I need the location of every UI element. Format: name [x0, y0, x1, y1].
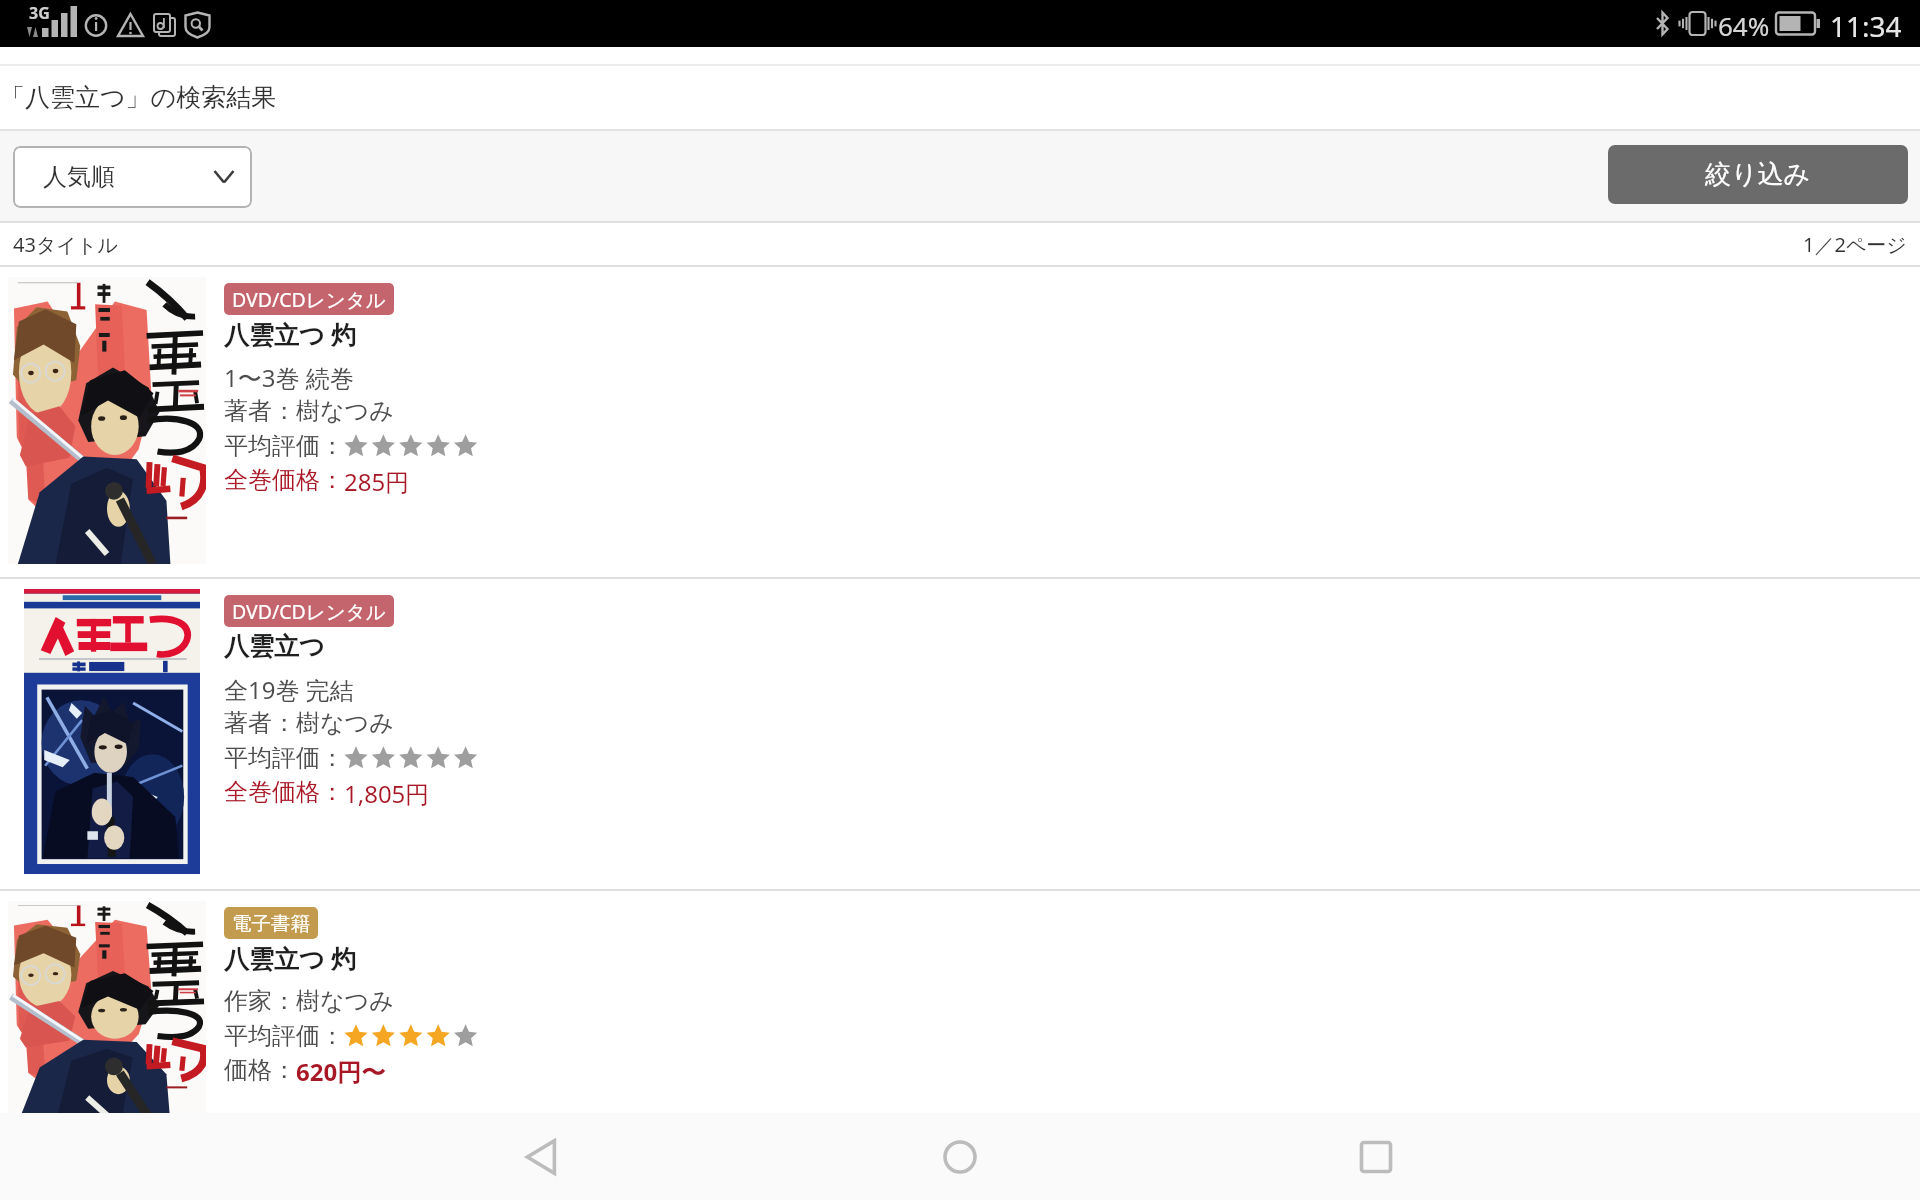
button[interactable]: Back: [481, 1117, 601, 1197]
staticText: 全巻価格：: [224, 465, 344, 495]
staticText: 平均評価：: [224, 431, 344, 461]
staticText: 3G: [29, 2, 50, 24]
staticText: 八雲立つ 灼: [224, 941, 357, 975]
button[interactable]: DVD/CDレンタル: [0, 267, 1920, 577]
staticText: 64%: [1718, 8, 1770, 43]
staticText: 43タイトル: [13, 231, 118, 258]
staticText: 11:34: [1830, 7, 1902, 45]
staticText: 「八雲立つ」の検索結果: [0, 82, 277, 113]
staticText: 著者：樹なつみ: [224, 396, 394, 426]
staticText: 1〜3巻 続巻: [224, 361, 354, 394]
staticText: 八雲立つ: [224, 631, 325, 662]
staticText: 285円: [344, 465, 410, 498]
staticText: 作家：樹なつみ: [224, 986, 394, 1016]
staticText: DVD/CDレンタル: [232, 286, 386, 313]
staticText: 著者：樹なつみ: [224, 708, 394, 738]
staticText: 全巻価格：: [224, 777, 344, 807]
staticText: 八雲立つ 灼: [224, 317, 357, 351]
button[interactable]: DVD/CDレンタル: [0, 579, 1920, 889]
staticText: DVD/CDレンタル: [232, 598, 386, 625]
button[interactable]: 絞り込み: [1608, 145, 1908, 204]
button[interactable]: Recent apps: [1316, 1117, 1436, 1197]
staticText: 平均評価：: [224, 743, 344, 773]
staticText: 全19巻 完結: [224, 673, 354, 706]
staticText: 電子書籍: [232, 911, 310, 936]
staticText: 絞り込み: [1705, 158, 1811, 191]
button[interactable]: 電子書籍: [0, 891, 1920, 1113]
staticText: 1,805円: [344, 777, 430, 810]
staticText: 価格：: [224, 1055, 296, 1085]
staticText: 人気順: [43, 162, 115, 192]
button[interactable]: 人気順: [13, 146, 252, 208]
button[interactable]: Home: [900, 1117, 1020, 1197]
staticText: 1／2ページ: [1803, 231, 1907, 258]
staticText: 平均評価：: [224, 1021, 344, 1051]
staticText: 620円〜: [296, 1055, 386, 1088]
